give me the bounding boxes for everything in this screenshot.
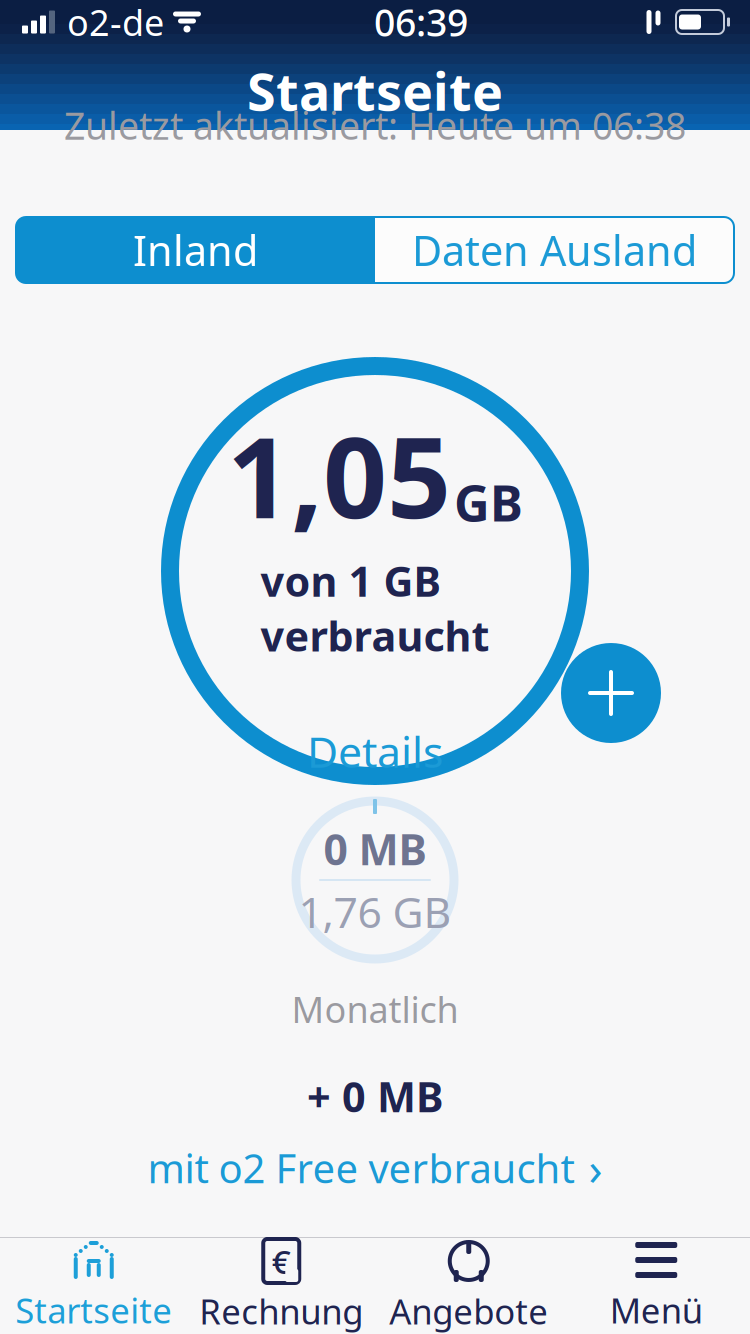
staticText: Rechnung xyxy=(199,1288,363,1334)
staticText: Details xyxy=(307,723,443,780)
staticText: mit o2 Free verbraucht xyxy=(147,1141,574,1194)
staticText: Monatlich xyxy=(291,985,458,1033)
staticText: Inland xyxy=(133,223,258,277)
staticText: Noch 12 Tage im Rechnungsmonat xyxy=(7,1236,742,1293)
staticText: 0 MB xyxy=(323,820,426,877)
staticText: von 1 GB verbraucht xyxy=(260,553,489,663)
staticText: 06:39 xyxy=(374,0,468,47)
staticText: 1,76 GB xyxy=(298,883,451,940)
staticText: Menü xyxy=(610,1287,703,1333)
button[interactable]: Datenpaket hinzufügen xyxy=(561,643,661,743)
staticText: o2-de xyxy=(67,0,164,46)
button[interactable]: Menü xyxy=(562,1238,750,1334)
button[interactable]: Inland xyxy=(16,217,375,283)
staticText: 1,05 xyxy=(227,400,451,549)
staticText: Daten Ausland xyxy=(412,223,697,277)
button[interactable]: mit o2 Free verbraucht xyxy=(137,1134,612,1202)
staticText: € xyxy=(272,1239,291,1283)
button[interactable]: € xyxy=(187,1238,375,1334)
staticText: › xyxy=(588,1138,602,1198)
button[interactable]: Angebote xyxy=(375,1238,562,1334)
staticText: Startseite xyxy=(15,1287,172,1333)
staticText: GB xyxy=(454,470,523,535)
staticText: Zuletzt aktualisiert: Heute um 06:38 xyxy=(64,100,686,150)
button[interactable]: Daten Ausland xyxy=(375,217,734,283)
button[interactable]: Details xyxy=(291,715,459,788)
button[interactable]: Startseite xyxy=(0,1238,187,1334)
staticText: Startseite xyxy=(247,56,503,125)
staticText: + 0 MB xyxy=(307,1069,443,1124)
staticText: Angebote xyxy=(389,1288,548,1334)
